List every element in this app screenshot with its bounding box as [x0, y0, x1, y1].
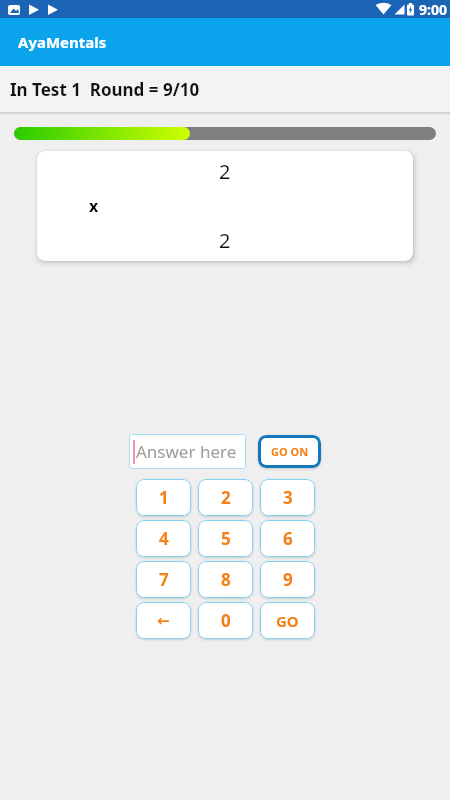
staticText: 1 [159, 486, 169, 509]
staticText: 9 [283, 568, 293, 591]
button[interactable]: 3 [260, 479, 315, 516]
staticText: 2 [219, 227, 231, 254]
button[interactable]: 1 [136, 479, 191, 516]
staticText: 5 [221, 527, 231, 550]
staticText: 0 [221, 609, 231, 632]
button[interactable]: GO ON [258, 435, 321, 468]
staticText: 2 [221, 486, 231, 509]
button[interactable]: 0 [198, 602, 253, 639]
staticText: GO ON [271, 444, 309, 459]
button[interactable]: 6 [260, 520, 315, 557]
button[interactable]: 5 [198, 520, 253, 557]
staticText: x [89, 195, 99, 217]
staticText: GO [276, 611, 299, 631]
button[interactable]: 7 [136, 561, 191, 598]
button[interactable]: Answer here [129, 434, 246, 469]
button[interactable]: 2 [198, 479, 253, 516]
staticText: 8 [221, 568, 231, 591]
staticText: In Test 1 Round = 9/10 [10, 78, 200, 101]
staticText: Answer here [136, 440, 237, 463]
button[interactable]: GO [260, 602, 315, 639]
staticText: 2 [219, 158, 231, 185]
staticText: 3 [283, 486, 293, 509]
staticText: 6 [283, 527, 293, 550]
button[interactable]: ← [136, 602, 191, 639]
button[interactable]: 9 [260, 561, 315, 598]
staticText: ← [157, 612, 170, 629]
staticText: 7 [159, 568, 169, 591]
staticText: 9:00 [419, 0, 447, 18]
button[interactable]: 8 [198, 561, 253, 598]
staticText: 4 [159, 527, 169, 550]
staticText: AyaMentals [18, 32, 107, 52]
button[interactable]: 4 [136, 520, 191, 557]
